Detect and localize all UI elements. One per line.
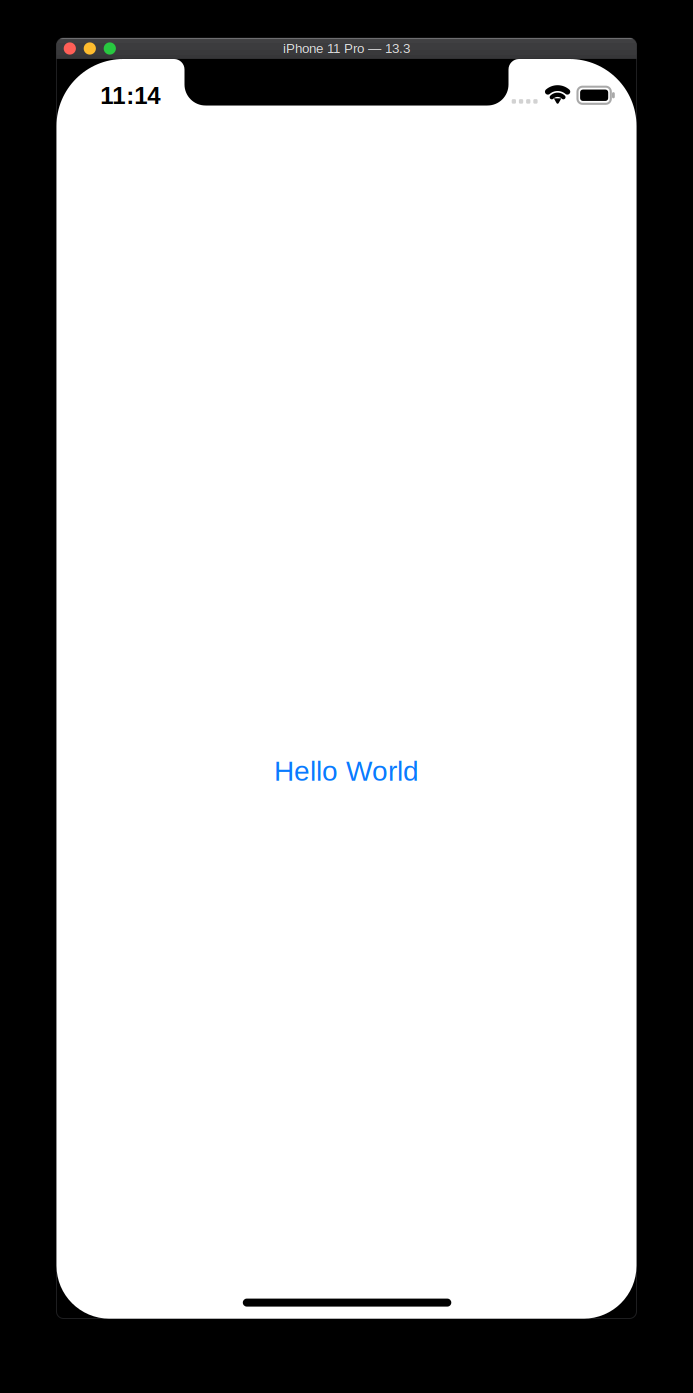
staticText: 11:14	[100, 82, 160, 109]
button[interactable]: Zoom	[104, 42, 116, 55]
button[interactable]: Close	[64, 42, 76, 55]
staticText: iPhone 11 Pro — 13.3	[283, 41, 410, 56]
staticText: Hello World	[274, 755, 419, 787]
button[interactable]: Minimize	[84, 42, 96, 55]
